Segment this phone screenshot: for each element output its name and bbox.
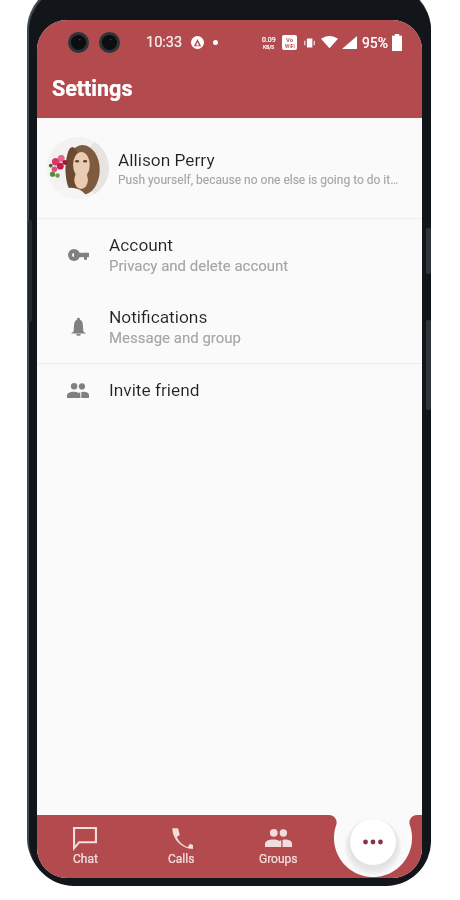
staticText: Account	[109, 235, 174, 255]
button[interactable]: Chat	[37, 815, 133, 878]
staticText: Calls	[168, 852, 195, 866]
staticText: Invite friend	[109, 380, 200, 400]
button[interactable]: More options	[350, 819, 396, 865]
button[interactable]: Account	[37, 219, 422, 291]
staticText: Allison Perry	[118, 150, 215, 170]
staticText: Groups	[259, 852, 298, 866]
button[interactable]: Calls	[133, 815, 230, 878]
button[interactable]: Groups	[230, 815, 327, 878]
staticText: Settings	[52, 76, 133, 101]
staticText: Vo	[286, 36, 294, 43]
staticText: Message and group	[109, 329, 242, 347]
staticText: WiFi	[285, 43, 295, 49]
button[interactable]: Invite friend	[37, 364, 422, 415]
staticText: Privacy and delete account	[109, 257, 289, 275]
button[interactable]: Notifications	[37, 291, 422, 363]
staticText: 10:33	[146, 34, 183, 51]
staticText: 0.09	[262, 36, 276, 44]
staticText: 95%	[362, 35, 388, 51]
staticText: Notifications	[109, 307, 208, 327]
staticText: Push yourself, because no one else is go…	[118, 173, 399, 187]
staticText: KB/S	[263, 44, 275, 50]
button[interactable]: Allison Perry	[37, 118, 422, 218]
staticText: Chat	[73, 852, 98, 866]
